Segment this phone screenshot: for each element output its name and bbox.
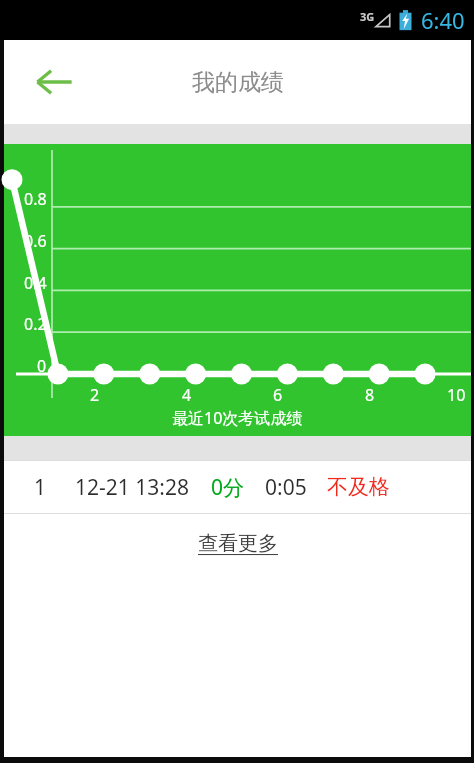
- staticText: 0.2: [24, 313, 47, 335]
- staticText: 2: [90, 384, 100, 406]
- staticText: 我的成绩: [192, 68, 284, 97]
- staticText: 0:05: [265, 473, 307, 502]
- staticText: 10: [447, 384, 466, 406]
- staticText: 4: [182, 384, 192, 406]
- staticText: 6:40: [421, 5, 465, 35]
- button[interactable]: 1: [4, 461, 471, 513]
- staticText: 查看更多: [198, 531, 278, 556]
- staticText: 3G: [360, 9, 375, 24]
- staticText: 0.4: [24, 272, 47, 294]
- staticText: 12-21 13:28: [75, 473, 189, 502]
- staticText: 0.6: [24, 230, 47, 252]
- button[interactable]: 查看更多: [4, 514, 471, 572]
- staticText: 0分: [211, 473, 245, 502]
- button[interactable]: Back: [26, 54, 82, 110]
- staticText: 1: [34, 473, 47, 502]
- staticText: 8: [365, 384, 375, 406]
- staticText: 0: [37, 355, 47, 377]
- staticText: 不及格: [327, 474, 390, 500]
- staticText: 0.8: [24, 188, 47, 210]
- staticText: 6: [273, 384, 283, 406]
- staticText: 最近10次考试成绩: [172, 407, 303, 429]
